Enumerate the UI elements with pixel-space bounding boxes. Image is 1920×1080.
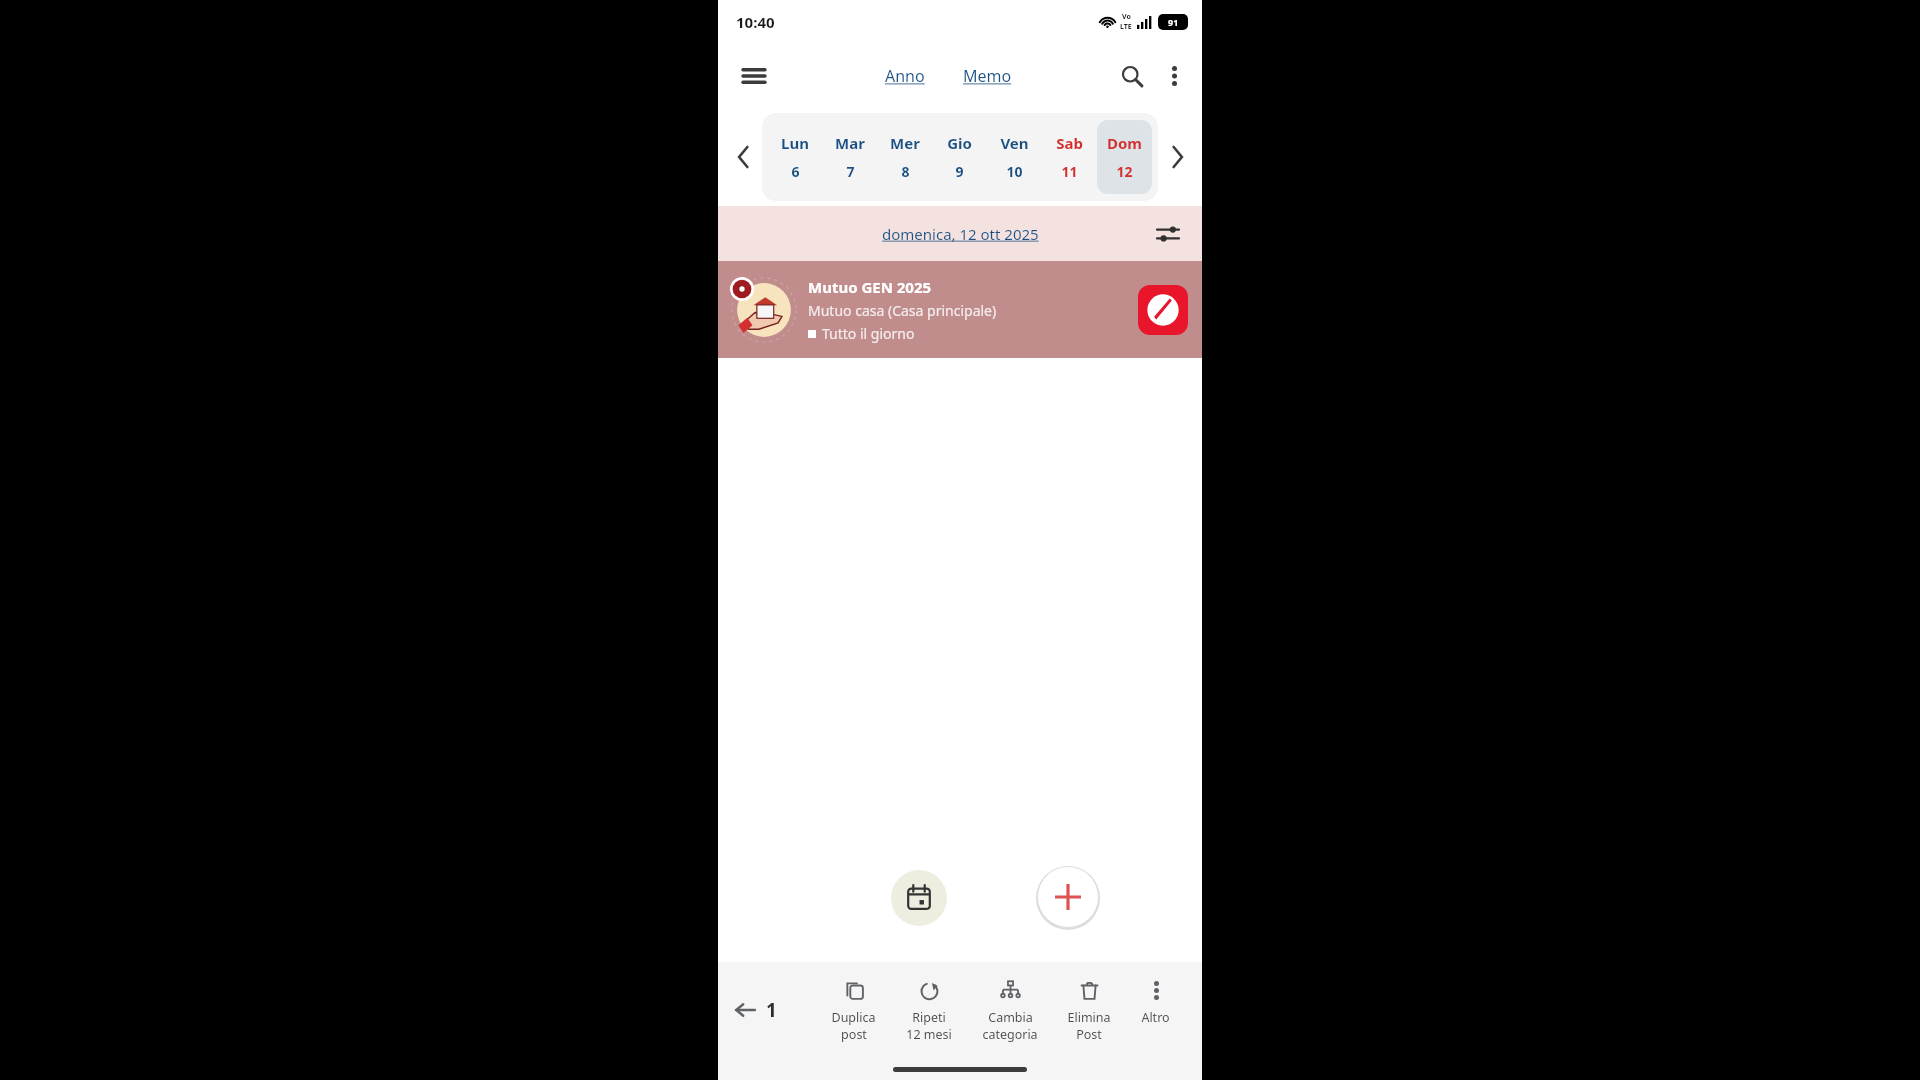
button[interactable]: More options (1154, 56, 1194, 96)
button[interactable]: Add (1038, 867, 1098, 927)
staticText: Altro (1141, 1009, 1170, 1026)
staticText: Sab (1056, 133, 1083, 153)
staticText: domenica, 12 ott 2025 (882, 224, 1039, 244)
staticText: Ripeti (912, 1009, 946, 1026)
button[interactable]: Duplica (829, 971, 878, 1049)
staticText: 10 (1006, 162, 1023, 181)
staticText: 6 (791, 162, 800, 181)
staticText: 10:40 (736, 12, 775, 32)
staticText: Mutuo GEN 2025 (808, 277, 932, 297)
button[interactable]: Lun (768, 120, 822, 194)
button[interactable]: Category (1138, 285, 1188, 335)
staticText: Dom (1107, 133, 1142, 153)
button[interactable]: Menu (732, 54, 776, 98)
button[interactable]: Memo (959, 59, 1016, 93)
button[interactable]: Next week (1158, 138, 1196, 176)
button[interactable]: Filter (1148, 214, 1188, 254)
button[interactable]: Anno (881, 59, 929, 93)
button[interactable]: 1 (734, 997, 777, 1023)
button[interactable]: Cambia (980, 971, 1040, 1049)
staticText: Mutuo casa (Casa principale) (808, 301, 997, 320)
staticText: Duplica (831, 1009, 876, 1026)
button[interactable]: Ven (987, 120, 1042, 194)
staticText: 91 (1168, 16, 1179, 28)
button[interactable]: Mer (877, 120, 932, 194)
staticText: Mar (835, 133, 865, 153)
staticText: Gio (947, 133, 972, 153)
staticText: Cambia (988, 1009, 1033, 1026)
button[interactable]: Mar (822, 120, 877, 194)
button[interactable]: Dom (1097, 120, 1152, 194)
staticText: Ven (1000, 133, 1029, 153)
staticText: 7 (846, 162, 855, 181)
staticText: 12 (1116, 162, 1133, 181)
staticText: Tutto il giorno (822, 324, 915, 343)
staticText: Post (1076, 1026, 1102, 1043)
button[interactable]: Sab (1042, 120, 1097, 194)
button[interactable]: Calendar (891, 870, 947, 926)
button[interactable]: Previous week (724, 138, 762, 176)
staticText: Vo (1122, 12, 1131, 22)
staticText: 12 mesi (906, 1026, 952, 1043)
staticText: 8 (901, 162, 910, 181)
staticText: Mer (890, 133, 920, 153)
staticText: categoria (982, 1026, 1038, 1043)
staticText: 1 (766, 997, 777, 1023)
staticText: post (841, 1026, 867, 1043)
button[interactable]: Elimina (1065, 971, 1113, 1049)
staticText: 9 (955, 162, 964, 181)
button[interactable]: Mutuo GEN 2025 (718, 261, 1202, 358)
button[interactable]: Ripeti (904, 971, 954, 1049)
button[interactable]: Altro (1139, 971, 1172, 1032)
staticText: LTE (1120, 22, 1132, 32)
staticText: Lun (781, 133, 809, 153)
staticText: Anno (885, 65, 925, 87)
button[interactable]: Gio (932, 120, 987, 194)
button[interactable]: Search (1110, 54, 1154, 98)
staticText: Memo (963, 65, 1012, 87)
staticText: Elimina (1067, 1009, 1111, 1026)
staticText: 11 (1061, 162, 1078, 181)
button[interactable]: domenica, 12 ott 2025 (876, 218, 1045, 250)
